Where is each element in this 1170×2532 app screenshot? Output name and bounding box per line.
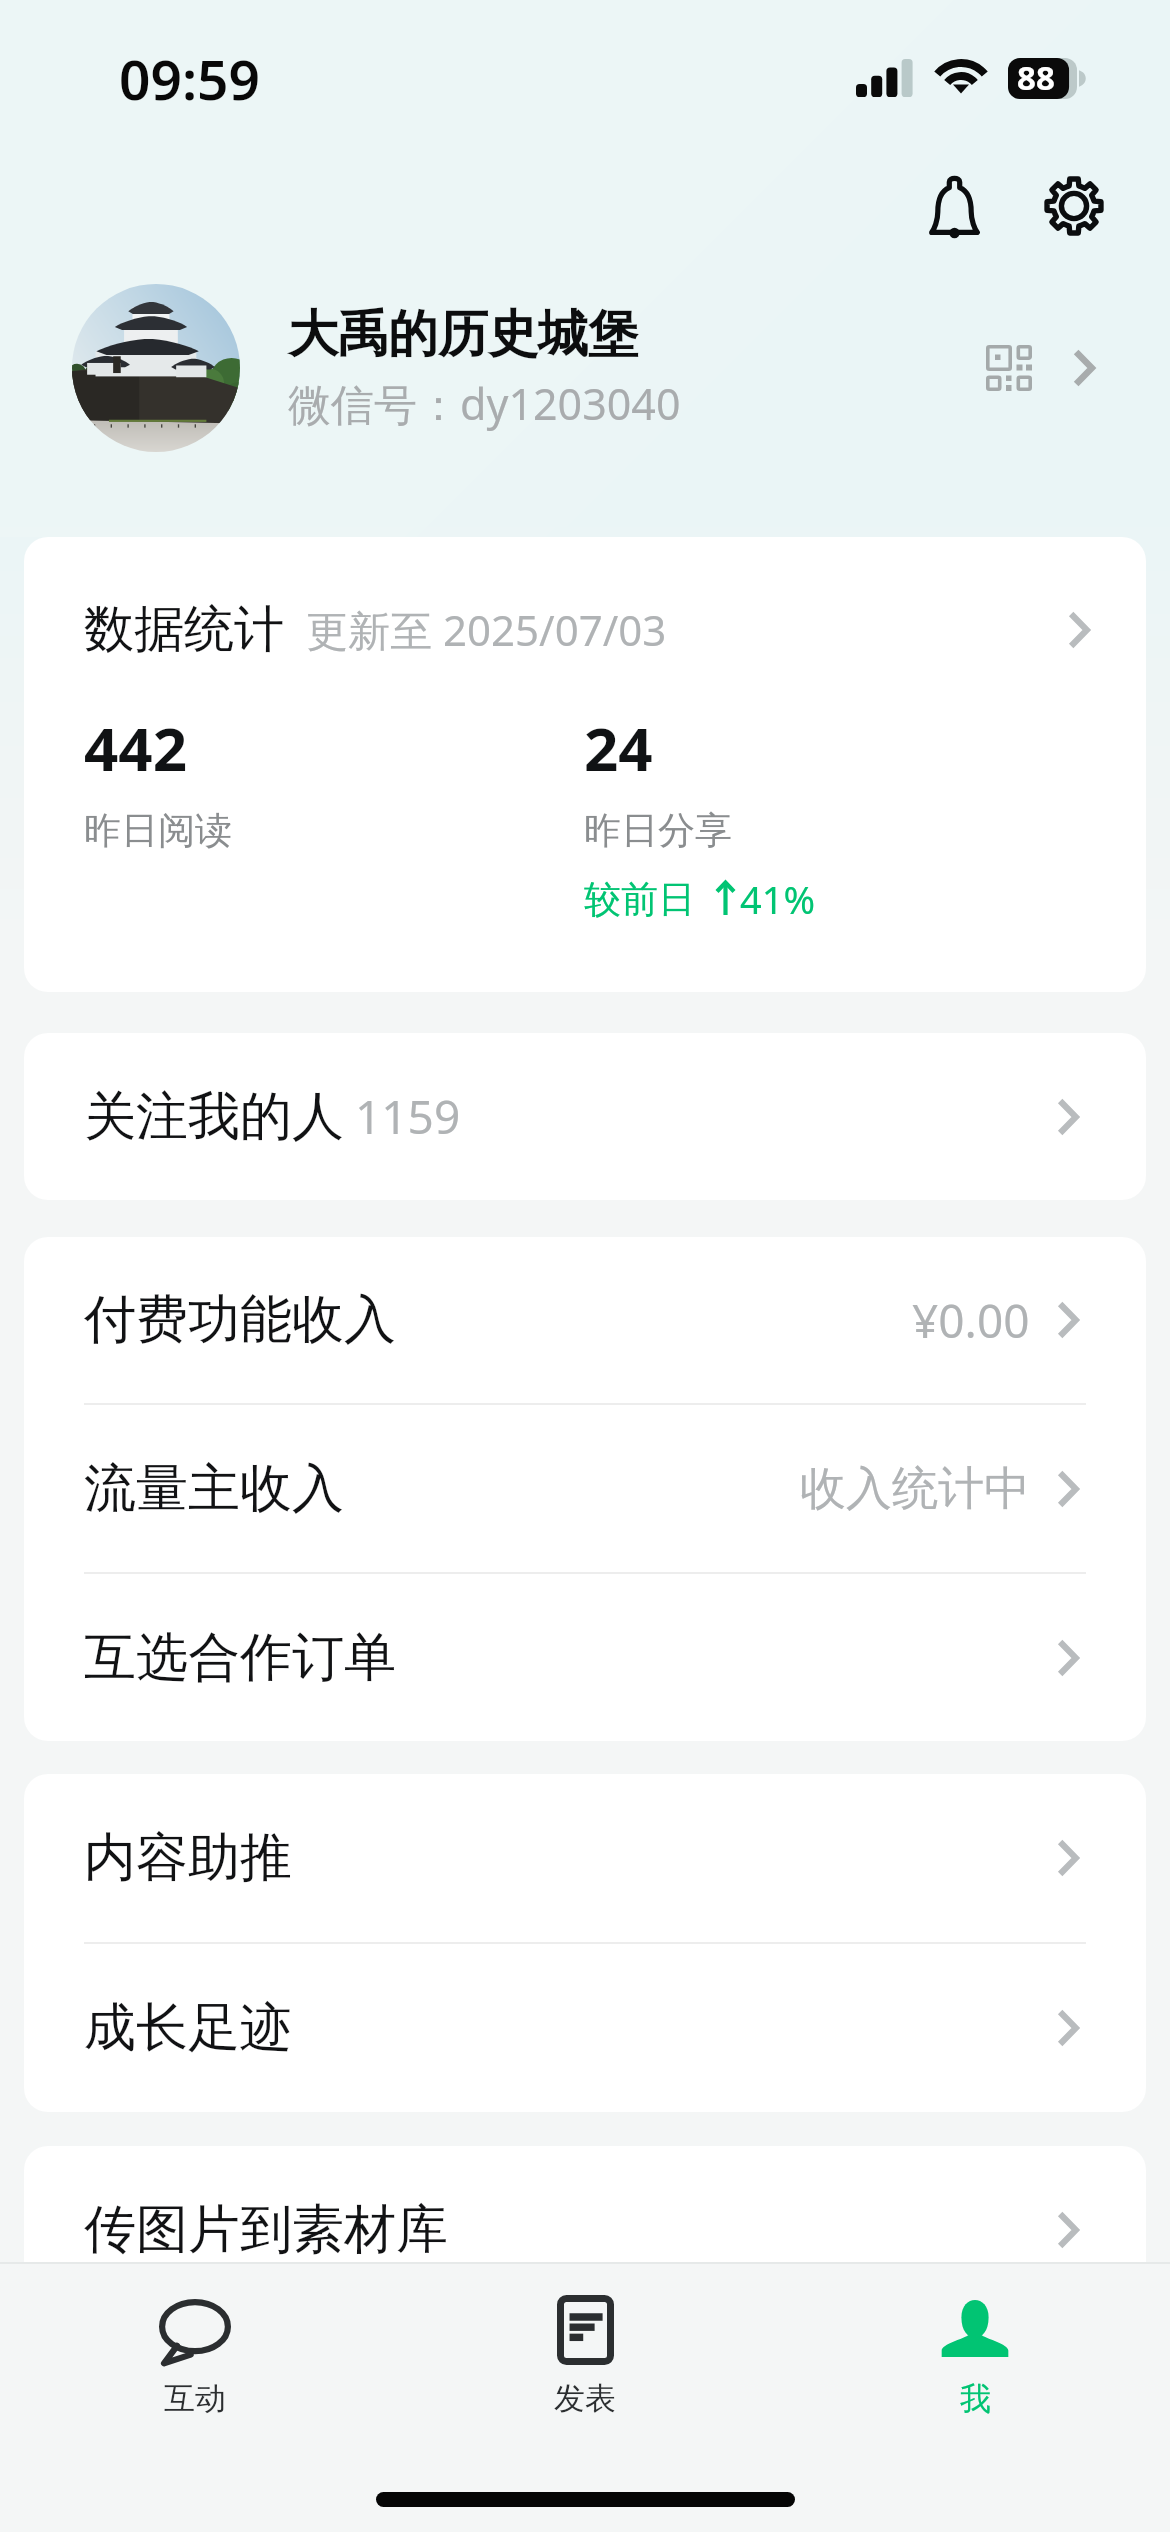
staticText: 传图片到素材库	[84, 2197, 448, 2263]
staticText: 成长足迹	[84, 1995, 292, 2061]
button[interactable]: 发表	[390, 2262, 780, 2438]
staticText: 较前日	[584, 876, 695, 923]
button[interactable]: 传图片到素材库	[24, 2146, 1146, 2314]
staticText: 互动	[164, 2379, 226, 2418]
button[interactable]: 大禹的历史城堡	[0, 268, 1170, 468]
staticText: 24	[584, 707, 653, 789]
staticText: 更新至 2025/07/03	[306, 601, 667, 658]
staticText: 发表	[554, 2379, 616, 2418]
staticText: 88	[1017, 55, 1055, 100]
button[interactable]: 成长足迹	[24, 1944, 1146, 2112]
staticText: 1159	[355, 1085, 461, 1148]
staticText: 关注我的人	[84, 1084, 344, 1150]
staticText: 昨日阅读	[84, 807, 232, 854]
button[interactable]: 关注我的人	[24, 1033, 1146, 1200]
staticText: 大禹的历史城堡	[288, 303, 638, 366]
button[interactable]: 流量主收入	[24, 1405, 1146, 1572]
button[interactable]: 互选合作订单	[24, 1574, 1146, 1741]
staticText: 昨日分享	[584, 807, 732, 854]
staticText: 流量主收入	[84, 1456, 344, 1522]
button[interactable]: Settings	[1026, 158, 1122, 254]
button[interactable]: 互动	[0, 2262, 390, 2438]
button[interactable]: 我	[780, 2262, 1170, 2438]
staticText: 数据统计	[84, 598, 284, 661]
button[interactable]: Notifications	[906, 158, 1002, 254]
staticText: 41%	[740, 873, 816, 925]
button[interactable]: 内容助推	[24, 1774, 1146, 1942]
staticText: 付费功能收入	[84, 1287, 396, 1353]
button[interactable]: My QR code	[965, 324, 1053, 412]
staticText: 微信号：dy1203040	[288, 374, 681, 433]
staticText: 内容助推	[84, 1825, 292, 1891]
staticText: ¥0.00	[912, 1289, 1030, 1352]
staticText: 收入统计中	[800, 1460, 1030, 1518]
staticText: 我	[960, 2379, 991, 2418]
staticText: 442	[84, 707, 187, 789]
staticText: 09:59	[119, 41, 261, 116]
button[interactable]: 付费功能收入	[24, 1237, 1146, 1403]
staticText: 互选合作订单	[84, 1625, 396, 1691]
button[interactable]: 数据统计	[24, 537, 1146, 992]
